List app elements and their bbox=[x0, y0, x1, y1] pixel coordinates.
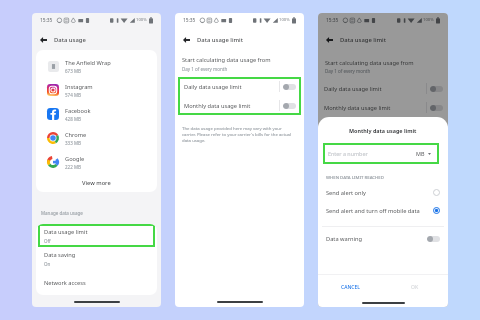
button[interactable]: OK bbox=[411, 284, 419, 291]
staticText: 574 MB bbox=[65, 92, 81, 98]
staticText: The Anfield Wrap bbox=[65, 59, 111, 67]
staticText: Data saving bbox=[44, 251, 76, 259]
button[interactable]: The Anfield Wrap bbox=[36, 54, 157, 78]
staticText: Data usage bbox=[54, 36, 86, 44]
staticText: 15:35 bbox=[40, 17, 53, 24]
staticText: 100% bbox=[136, 17, 147, 23]
staticText: Day 1 of every month bbox=[325, 68, 371, 74]
staticText: 100% bbox=[279, 17, 290, 23]
button[interactable]: Network access bbox=[36, 270, 157, 295]
staticText: 15:35 bbox=[326, 17, 339, 24]
staticText: OK bbox=[411, 284, 419, 291]
staticText: Data usage limit bbox=[197, 36, 243, 44]
button[interactable]: Daily data usage limit bbox=[178, 77, 301, 96]
staticText: 222 MB bbox=[65, 164, 81, 170]
staticText: Network access bbox=[44, 279, 86, 287]
staticText: Day 1 of every month bbox=[182, 66, 228, 72]
button[interactable]: Back bbox=[36, 33, 50, 47]
staticText: Monthly data usage limit bbox=[184, 102, 251, 110]
button[interactable]: View more bbox=[36, 174, 157, 192]
button[interactable]: Instagram bbox=[36, 78, 157, 102]
staticText: 333 MB bbox=[65, 140, 81, 146]
button[interactable]: Daily data usage limit bbox=[318, 79, 448, 98]
staticText: Facebook bbox=[65, 107, 91, 115]
button[interactable]: Data usage limit bbox=[36, 224, 157, 247]
button[interactable]: Monthly data usage limit bbox=[178, 96, 301, 115]
staticText: 100% bbox=[423, 17, 434, 23]
staticText: Daily data usage limit bbox=[324, 85, 382, 93]
staticText: CANCEL bbox=[341, 284, 360, 291]
staticText: Data warning bbox=[326, 235, 363, 243]
staticText: Instagram bbox=[65, 83, 93, 91]
button[interactable]: Back bbox=[179, 33, 193, 47]
staticText: Start calculating data usage from bbox=[325, 59, 414, 67]
button[interactable]: Data saving bbox=[36, 247, 157, 270]
button[interactable]: Back bbox=[322, 33, 336, 47]
staticText: 428 MB bbox=[65, 116, 81, 122]
staticText: Send alert only bbox=[326, 189, 366, 197]
button[interactable]: Chrome bbox=[36, 126, 157, 150]
staticText: 673 MB bbox=[65, 68, 81, 74]
staticText: Send alert and turn off mobile data bbox=[326, 207, 420, 215]
button[interactable]: Facebook bbox=[36, 102, 157, 126]
button[interactable]: Google bbox=[36, 150, 157, 174]
staticText: Daily data usage limit bbox=[184, 83, 242, 91]
staticText: Enter a number bbox=[328, 150, 368, 157]
button[interactable]: Send alert and turn off mobile data bbox=[318, 202, 448, 219]
staticText: WHEN DATA LIMIT REACHED bbox=[326, 174, 384, 180]
staticText: Chrome bbox=[65, 131, 87, 139]
staticText: 15:35 bbox=[183, 17, 196, 24]
button[interactable]: Monthly data usage limit bbox=[318, 98, 448, 117]
staticText: MB bbox=[416, 150, 425, 157]
staticText: Monthly data usage limit bbox=[324, 104, 391, 112]
staticText: Off bbox=[44, 238, 51, 244]
button[interactable]: CANCEL bbox=[341, 284, 360, 291]
staticText: The data usage provided here may vary wi… bbox=[182, 125, 294, 143]
staticText: Monthly data usage limit bbox=[349, 127, 417, 134]
staticText: On bbox=[44, 261, 51, 267]
staticText: Google bbox=[65, 155, 85, 163]
staticText: Data usage limit bbox=[44, 228, 88, 236]
staticText: Start calculating data usage from bbox=[182, 56, 271, 64]
staticText: Data usage limit bbox=[340, 36, 386, 44]
button[interactable]: Send alert only bbox=[318, 184, 448, 201]
staticText: View more bbox=[82, 179, 111, 187]
staticText: Manage data usage bbox=[41, 210, 83, 216]
button[interactable]: Data warning bbox=[318, 231, 448, 247]
